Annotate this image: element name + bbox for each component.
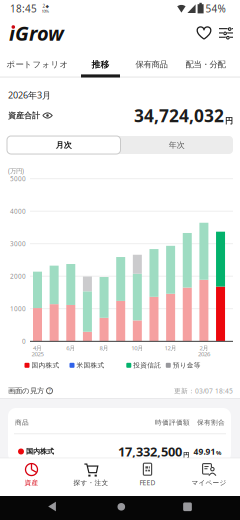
button[interactable]: 探す・注文 [63, 458, 119, 492]
staticText: ? [48, 387, 50, 394]
staticText: 54% [205, 2, 225, 15]
staticText: 18:45 [10, 2, 37, 15]
staticText: iGrow [9, 19, 64, 47]
staticText: FEED [139, 478, 155, 487]
staticText: 円 [183, 451, 189, 459]
staticText: (万円) [8, 166, 24, 175]
button[interactable]: FEED [119, 458, 175, 492]
staticText: 2000 [10, 272, 26, 280]
staticText: 10月 [131, 344, 143, 352]
staticText: 時価評価額 [155, 418, 190, 427]
staticText: 2026年3月 [8, 89, 51, 101]
button[interactable]: 資産 [3, 458, 59, 492]
staticText: 49.91 [193, 446, 215, 457]
staticText: 推移 [91, 59, 109, 70]
staticText: 投資信託 [133, 361, 161, 369]
staticText: 保有商品 [135, 59, 167, 70]
staticText: 34,724,032 [134, 104, 224, 127]
staticText: 4月 [33, 344, 42, 352]
button[interactable]: 保有商品 [135, 51, 167, 77]
button[interactable]: 月次 [7, 136, 120, 154]
staticText: 探す・注文 [73, 479, 108, 487]
staticText: 0 [22, 337, 26, 345]
button[interactable]: マイページ [181, 458, 237, 492]
button[interactable]: 画面の見方 [8, 386, 52, 395]
staticText: 3000 [10, 239, 26, 248]
staticText: 画面の見方 [8, 386, 44, 395]
staticText: 国内株式 [26, 447, 54, 456]
staticText: 年次 [169, 140, 185, 150]
button[interactable]: 推移 [91, 51, 109, 77]
button[interactable]: Recents [177, 497, 197, 517]
staticText: 米国株式 [76, 361, 104, 369]
staticText: 預り金等 [173, 361, 201, 369]
staticText: 保有割合 [197, 418, 225, 427]
staticText: 資産合計 [8, 110, 40, 121]
staticText: 商品 [15, 418, 29, 427]
staticText: 2◆ [42, 3, 48, 9]
button[interactable]: Favorites [193, 20, 215, 46]
staticText: ポートフォリオ [6, 59, 68, 70]
staticText: 2026 [198, 350, 210, 358]
button[interactable]: Home [111, 497, 131, 517]
staticText: 4000 [10, 207, 26, 215]
button[interactable]: Hide amount [40, 108, 54, 122]
staticText: % [216, 448, 221, 457]
staticText: 月次 [56, 140, 72, 150]
staticText: 1000 [10, 304, 26, 313]
button[interactable]: ポートフォリオ [6, 51, 68, 77]
staticText: 資産 [24, 479, 38, 487]
staticText: 国内株式 [31, 361, 59, 369]
button[interactable]: Display settings [216, 20, 236, 46]
staticText: 配当・分配 [185, 59, 225, 70]
staticText: 10% [41, 8, 49, 14]
staticText: 8月 [100, 344, 109, 352]
staticText: 円 [225, 116, 233, 126]
button[interactable]: Back [42, 496, 62, 516]
staticText: 5000 [10, 174, 26, 183]
staticText: 2月 [199, 344, 208, 352]
staticText: 更新：03/07 18:45 [174, 386, 233, 395]
staticText: 2025 [31, 350, 43, 358]
staticText: 12月 [165, 344, 177, 352]
button[interactable]: 国内株式 [18, 439, 221, 463]
button[interactable]: 配当・分配 [185, 51, 225, 77]
staticText: 17,332,500 [118, 443, 182, 460]
staticText: 6月 [66, 344, 75, 352]
button[interactable]: 年次 [121, 136, 233, 154]
staticText: マイページ [191, 479, 226, 487]
